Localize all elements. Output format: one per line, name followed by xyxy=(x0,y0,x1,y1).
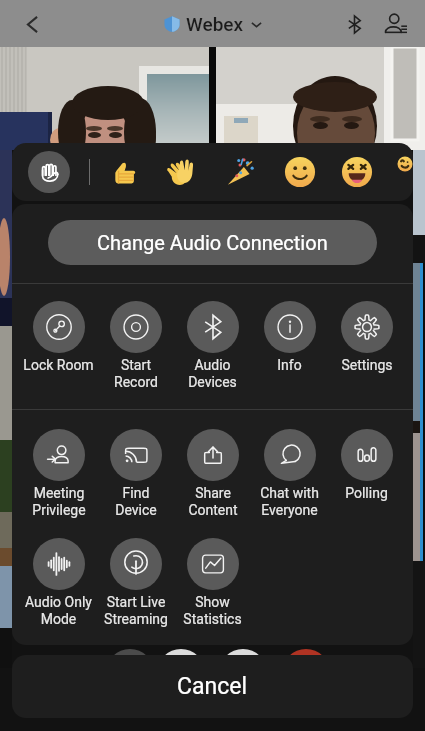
button[interactable]: Show Statistics xyxy=(174,538,251,629)
button[interactable]: Share Content xyxy=(174,429,251,519)
button[interactable]: clap xyxy=(164,155,198,189)
staticText: Chat with Everyone xyxy=(260,485,319,519)
staticText: Audio Devices xyxy=(188,357,237,391)
staticText: Lock Room xyxy=(23,357,94,373)
button[interactable]: Audio Only Mode xyxy=(20,538,97,629)
staticText: Start Record xyxy=(114,357,158,391)
button[interactable]: Find Device xyxy=(97,429,174,519)
button[interactable]: Webex xyxy=(164,13,262,35)
button[interactable]: smile xyxy=(283,155,317,189)
button[interactable]: Cancel xyxy=(12,655,413,718)
button[interactable]: Back xyxy=(12,4,52,44)
button[interactable]: Audio Devices xyxy=(174,301,251,409)
staticText: Cancel xyxy=(177,673,248,700)
button[interactable]: party xyxy=(223,155,257,189)
button[interactable]: Polling xyxy=(328,429,405,519)
button[interactable]: laugh xyxy=(340,155,374,189)
staticText: Webex xyxy=(186,13,244,35)
staticText: Start Live Streaming xyxy=(104,594,168,628)
staticText: Show Statistics xyxy=(183,594,242,628)
staticText: Find Device xyxy=(115,485,157,519)
staticText: Audio Only Mode xyxy=(25,594,92,628)
button[interactable]: Info xyxy=(251,301,328,409)
staticText: Meeting Privilege xyxy=(32,485,86,519)
staticText: Share Content xyxy=(188,485,238,519)
button[interactable]: Bluetooth xyxy=(333,3,375,45)
button[interactable]: Start Record xyxy=(97,301,174,409)
button[interactable]: Participants xyxy=(375,3,417,45)
button[interactable]: Chat with Everyone xyxy=(251,429,328,519)
button[interactable]: wink xyxy=(397,155,413,189)
button[interactable]: Change Audio Connection xyxy=(48,220,377,265)
button[interactable]: Raise hand xyxy=(28,151,70,193)
staticText: Change Audio Connection xyxy=(97,231,328,254)
button[interactable]: Settings xyxy=(328,301,405,409)
staticText: Polling xyxy=(345,485,388,501)
staticText: Settings xyxy=(341,357,393,373)
button[interactable]: thumbsup xyxy=(106,155,140,189)
button[interactable]: Lock Room xyxy=(20,301,97,409)
button[interactable]: Start Live Streaming xyxy=(97,538,174,629)
button[interactable]: Meeting Privilege xyxy=(20,429,97,519)
staticText: Info xyxy=(277,357,302,373)
